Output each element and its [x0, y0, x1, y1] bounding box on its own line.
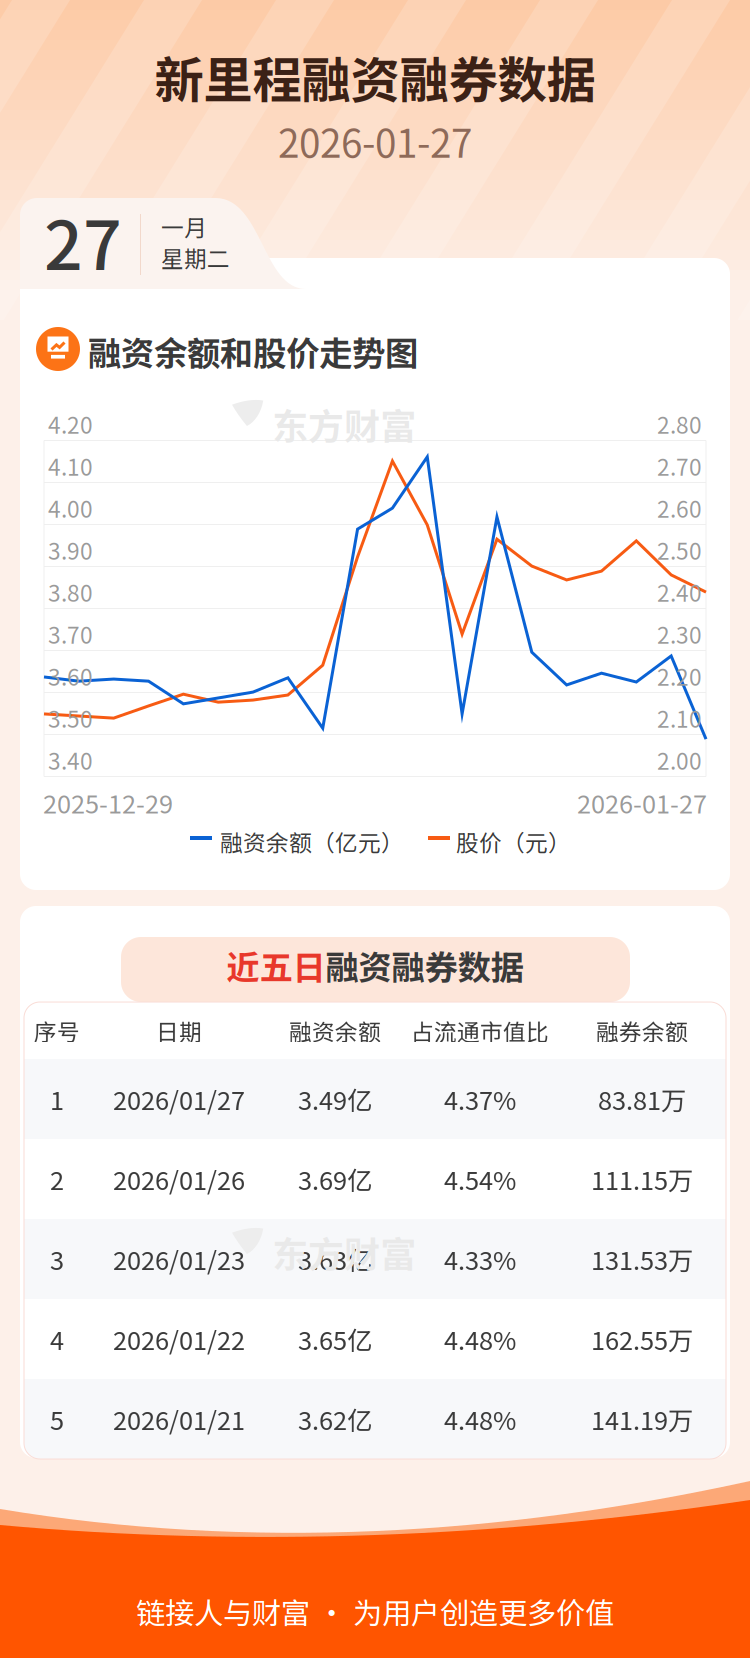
staticText: 4.10	[48, 449, 93, 482]
staticText: 4.00	[48, 491, 93, 524]
staticText: 2.70	[657, 449, 702, 482]
staticText: 2026-01-27	[278, 113, 472, 169]
staticText: 3.70	[48, 617, 93, 650]
staticText: 111.15万	[591, 1161, 693, 1197]
staticText: 3.62亿	[298, 1401, 372, 1437]
staticText: 2026/01/21	[113, 1401, 245, 1437]
staticText: 3.90	[48, 533, 93, 566]
staticText: 融券余额	[596, 1014, 688, 1047]
staticText: 2.10	[657, 701, 702, 734]
staticText: 3.63亿	[298, 1241, 372, 1277]
staticText: 131.53万	[591, 1241, 693, 1277]
staticText: 4.37%	[444, 1081, 516, 1117]
staticText: 2026/01/23	[113, 1241, 245, 1277]
staticText: 4.33%	[444, 1241, 516, 1277]
staticText: 2026/01/26	[113, 1161, 245, 1197]
staticText: 链接人与财富 · 为用户创造更多价值	[136, 1590, 614, 1632]
staticText: 4.20	[48, 407, 93, 440]
staticText: 2026-01-27	[577, 784, 707, 821]
staticText: 1	[50, 1081, 64, 1117]
staticText: 2026/01/27	[113, 1081, 245, 1117]
staticText: 融资余额和股价走势图	[88, 327, 418, 375]
staticText: 近五日	[226, 941, 325, 989]
staticText: 3.69亿	[298, 1161, 372, 1197]
staticText: 2.60	[657, 491, 702, 524]
staticText: 星期二	[161, 241, 230, 274]
staticText: 2.30	[657, 617, 702, 650]
staticText: 3	[50, 1241, 64, 1277]
staticText: 2	[50, 1161, 64, 1197]
staticText: 融资融券数据	[325, 941, 523, 989]
staticText: 东方财富	[272, 1226, 416, 1278]
staticText: 5	[50, 1401, 64, 1437]
staticText: 3.40	[48, 743, 93, 776]
staticText: 162.55万	[591, 1321, 693, 1357]
staticText: 占流通市值比	[411, 1014, 549, 1047]
staticText: 3.50	[48, 701, 93, 734]
staticText: 一月	[161, 210, 207, 243]
staticText: 4.48%	[444, 1321, 516, 1357]
staticText: 新里程融资融券数据	[154, 41, 595, 112]
staticText: 4.54%	[444, 1161, 516, 1197]
staticText: 2025-12-29	[43, 784, 173, 821]
staticText: 3.60	[48, 659, 93, 692]
staticText: 2.40	[657, 575, 702, 608]
staticText: 3.49亿	[298, 1081, 372, 1117]
staticText: 2.50	[657, 533, 702, 566]
staticText: 27	[44, 191, 122, 289]
staticText: 序号	[34, 1014, 80, 1047]
staticText: 融资余额	[289, 1014, 381, 1047]
staticText: 融资余额（亿元）	[220, 825, 404, 858]
staticText: 3.65亿	[298, 1321, 372, 1357]
staticText: 141.19万	[591, 1401, 693, 1437]
staticText: 4	[50, 1321, 64, 1357]
staticText: 东方财富	[272, 398, 416, 450]
staticText: 2.00	[657, 743, 702, 776]
staticText: 2026/01/22	[113, 1321, 245, 1357]
staticText: 4.48%	[444, 1401, 516, 1437]
staticText: 3.80	[48, 575, 93, 608]
staticText: 股价（元）	[456, 825, 571, 858]
staticText: 日期	[156, 1014, 202, 1047]
staticText: 2.20	[657, 659, 702, 692]
staticText: 2.80	[657, 407, 702, 440]
staticText: 83.81万	[598, 1081, 686, 1117]
